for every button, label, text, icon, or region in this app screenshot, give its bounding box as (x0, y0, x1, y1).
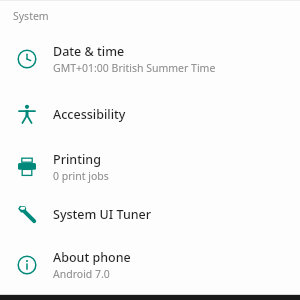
staticText: GMT+01:00 British Summer Time (53, 61, 216, 75)
staticText: System (13, 9, 49, 23)
staticText: Android 7.0 (53, 267, 110, 281)
staticText: Printing (53, 151, 101, 168)
staticText: About phone (53, 249, 131, 266)
button[interactable]: System UI Tuner (0, 196, 300, 232)
staticText: Date & time (53, 43, 125, 60)
button[interactable]: Printing (0, 149, 300, 185)
button[interactable]: Date and time (0, 41, 300, 77)
button[interactable]: About phone (0, 247, 300, 283)
button[interactable]: Accessibility (0, 96, 300, 132)
staticText: System UI Tuner (53, 206, 152, 223)
staticText: Accessibility (53, 106, 126, 123)
staticText: 0 print jobs (53, 169, 109, 183)
